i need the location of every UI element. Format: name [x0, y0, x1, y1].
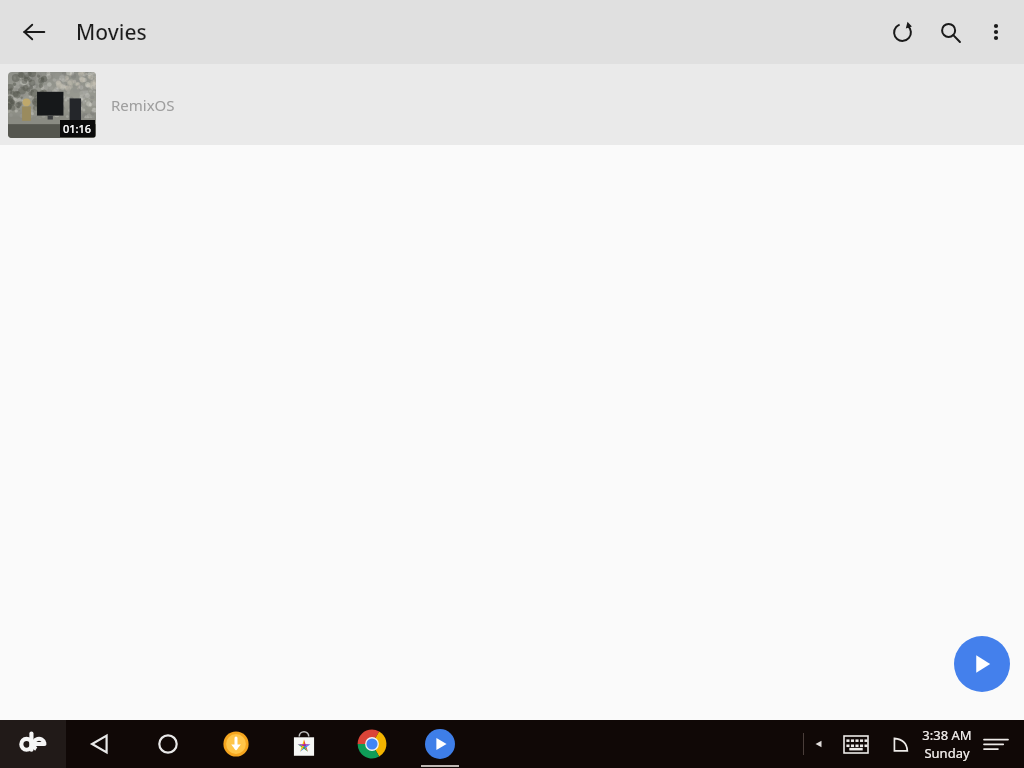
staticText: Sunday — [924, 744, 970, 762]
button[interactable]: Notifications — [972, 720, 1020, 768]
button[interactable]: Video player — [406, 720, 474, 768]
staticText: RemixOS — [111, 95, 175, 115]
button[interactable]: Back — [66, 720, 134, 768]
button[interactable]: Back — [16, 14, 52, 50]
button[interactable]: Search — [926, 8, 974, 56]
button[interactable]: Play — [954, 636, 1010, 692]
button[interactable]: Refresh — [878, 8, 926, 56]
button[interactable]: Network — [878, 720, 922, 768]
button[interactable]: Show hidden icons — [804, 720, 834, 768]
button[interactable]: 01:16 — [0, 64, 1024, 145]
staticText: 01:16 — [63, 121, 92, 136]
button[interactable]: Keyboard — [834, 720, 878, 768]
button[interactable]: App store — [270, 720, 338, 768]
button[interactable]: 3:38 AM — [922, 720, 972, 768]
button[interactable]: More options — [974, 10, 1018, 54]
staticText: 3:38 AM — [922, 726, 972, 744]
button[interactable]: Apps — [0, 720, 66, 768]
button[interactable]: Downloads — [202, 720, 270, 768]
button[interactable]: Chrome — [338, 720, 406, 768]
button[interactable]: Home — [134, 720, 202, 768]
staticText: Movies — [76, 18, 147, 47]
